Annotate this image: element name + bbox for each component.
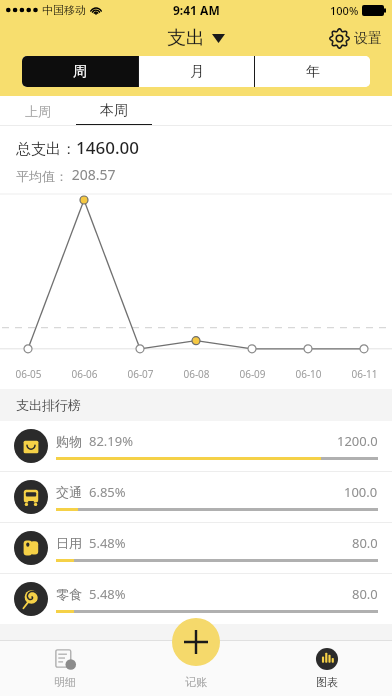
button[interactable]: 年 <box>255 56 370 87</box>
staticText: 日用 <box>56 535 82 551</box>
staticText: 中国移动 <box>42 3 86 17</box>
staticText: 100.0 <box>344 483 378 501</box>
staticText: 上周 <box>25 103 51 119</box>
button[interactable]: 支出 <box>167 26 225 50</box>
staticText: 设置 <box>354 30 382 48</box>
staticText: 06-06 <box>71 367 98 381</box>
staticText: 80.0 <box>352 585 378 603</box>
button[interactable]: 购物 <box>0 421 392 471</box>
staticText: 平均值： <box>16 168 68 184</box>
staticText: 100% <box>330 3 359 18</box>
staticText: 9:41 AM <box>173 2 220 18</box>
staticText: 图表 <box>316 675 338 689</box>
button[interactable]: 零食 <box>0 574 392 624</box>
staticText: 月 <box>190 63 204 81</box>
button[interactable]: 本周 <box>76 96 152 126</box>
staticText: 零食 <box>56 586 82 602</box>
staticText: 06-11 <box>351 367 378 381</box>
staticText: 明细 <box>54 675 76 689</box>
button[interactable]: 交通 <box>0 472 392 522</box>
button[interactable]: 月 <box>139 56 254 87</box>
staticText: 82.19% <box>89 432 134 450</box>
staticText: 208.57 <box>68 165 116 184</box>
staticText: 5.48% <box>89 585 126 603</box>
staticText: 记账 <box>185 675 207 689</box>
staticText: 购物 <box>56 433 82 449</box>
staticText: 支出排行榜 <box>16 397 81 413</box>
button[interactable]: 上周 <box>0 96 76 126</box>
staticText: 支出 <box>167 26 205 50</box>
staticText: 1460.00 <box>76 136 139 159</box>
staticText: 交通 <box>56 484 82 500</box>
staticText: 年 <box>306 63 320 81</box>
staticText: 06-09 <box>239 367 266 381</box>
staticText: 1200.0 <box>337 432 378 450</box>
button[interactable]: 明细 <box>0 640 130 696</box>
staticText: 06-05 <box>15 367 42 381</box>
staticText: 周 <box>73 63 87 81</box>
staticText: 06-10 <box>295 367 322 381</box>
staticText: 6.85% <box>89 483 126 501</box>
staticText: 本周 <box>100 102 128 120</box>
button[interactable]: 日用 <box>0 523 392 573</box>
staticText: 06-08 <box>183 367 210 381</box>
button[interactable]: 图表 <box>261 640 392 696</box>
button[interactable]: 记账 <box>172 618 220 666</box>
button[interactable]: 设置 <box>329 28 382 49</box>
staticText: 5.48% <box>89 534 126 552</box>
staticText: 80.0 <box>352 534 378 552</box>
staticText: 06-07 <box>127 367 154 381</box>
staticText: 总支出： <box>16 140 76 159</box>
button[interactable]: 周 <box>22 56 138 87</box>
